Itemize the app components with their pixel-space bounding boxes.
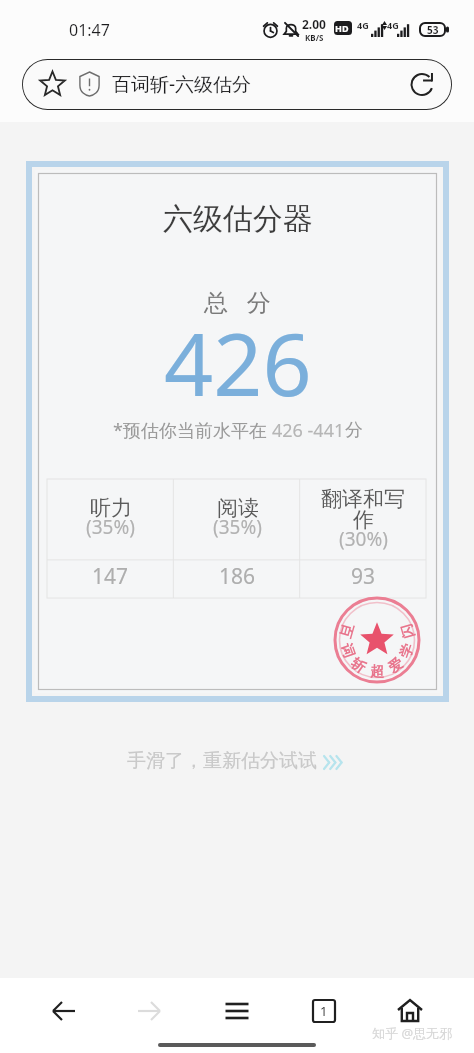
button[interactable]: 手滑了，重新估分试试 — [127, 747, 347, 773]
button[interactable]: Tabs — [304, 991, 344, 1031]
staticText: 分 — [345, 419, 363, 442]
staticText: 闪 — [397, 622, 419, 640]
button[interactable]: Home — [390, 991, 430, 1031]
staticText: 1 — [320, 1002, 328, 1020]
staticText: 手滑了，重新估分试试 — [127, 747, 322, 773]
staticText: 阅读 — [217, 495, 259, 521]
staticText: (30%) — [339, 526, 388, 552]
staticText: 4G — [357, 19, 369, 31]
staticText: (35%) — [213, 514, 262, 540]
staticText: 学 — [396, 641, 418, 661]
staticText: (35%) — [86, 514, 135, 540]
staticText: 百 — [335, 622, 357, 640]
staticText: 147 — [92, 562, 129, 591]
staticText: 4G — [387, 19, 399, 31]
staticText: 斩 — [347, 655, 369, 677]
staticText: 超 — [370, 663, 384, 681]
staticText: 词 — [336, 641, 358, 661]
staticText: 53 — [427, 23, 439, 37]
staticText: 01:47 — [69, 19, 110, 41]
staticText: 总 分 — [204, 285, 271, 318]
button[interactable]: Forward — [129, 991, 169, 1031]
staticText: 2.00 — [302, 16, 326, 32]
staticText: 爱 — [385, 655, 407, 677]
staticText: 186 — [219, 562, 256, 591]
staticText: 426 — [164, 304, 312, 421]
staticText: *预估你当前水平在 — [113, 418, 272, 443]
button[interactable]: Back — [44, 991, 84, 1031]
staticText: 翻译和写 — [321, 486, 405, 512]
staticText: 六级估分器 — [163, 200, 313, 238]
other: navigation — [0, 978, 474, 1053]
staticText: 426 -441 — [272, 418, 345, 443]
button[interactable]: Menu — [217, 991, 257, 1031]
staticText: KB/S — [305, 32, 324, 43]
staticText: 作 — [353, 507, 374, 533]
button[interactable]: 百词斩-六级估分 — [22, 59, 452, 110]
staticText: 听力 — [90, 495, 132, 521]
staticText: HD — [335, 22, 349, 34]
staticText: 知乎 @思无邪 — [372, 1024, 453, 1042]
staticText: 百词斩-六级估分 — [112, 71, 252, 97]
staticText: 93 — [351, 562, 376, 591]
